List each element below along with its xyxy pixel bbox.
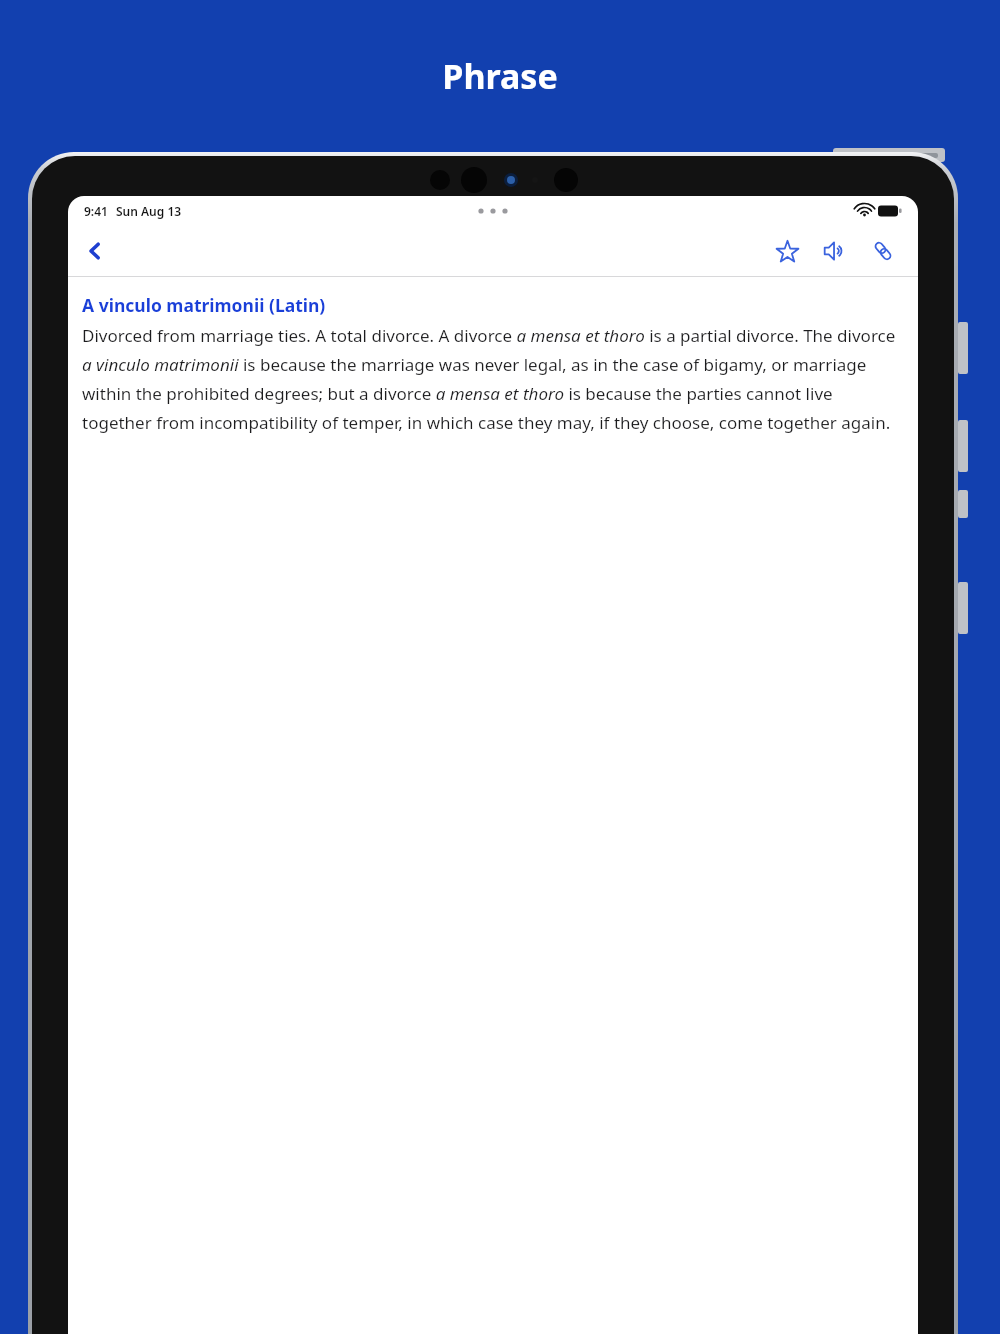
button[interactable]: Back [72,228,118,274]
button[interactable]: Copy link [860,228,906,274]
staticText: Sun Aug 13 [116,203,182,219]
button[interactable]: Play pronunciation [812,228,858,274]
staticText: Phrase [442,53,558,99]
button[interactable]: Favorite [764,228,810,274]
staticText: 9:41 [84,203,108,219]
staticText: Divorced from marriage ties. A total div… [82,324,904,434]
staticText: A vinculo matrimonii (Latin) [82,293,326,317]
